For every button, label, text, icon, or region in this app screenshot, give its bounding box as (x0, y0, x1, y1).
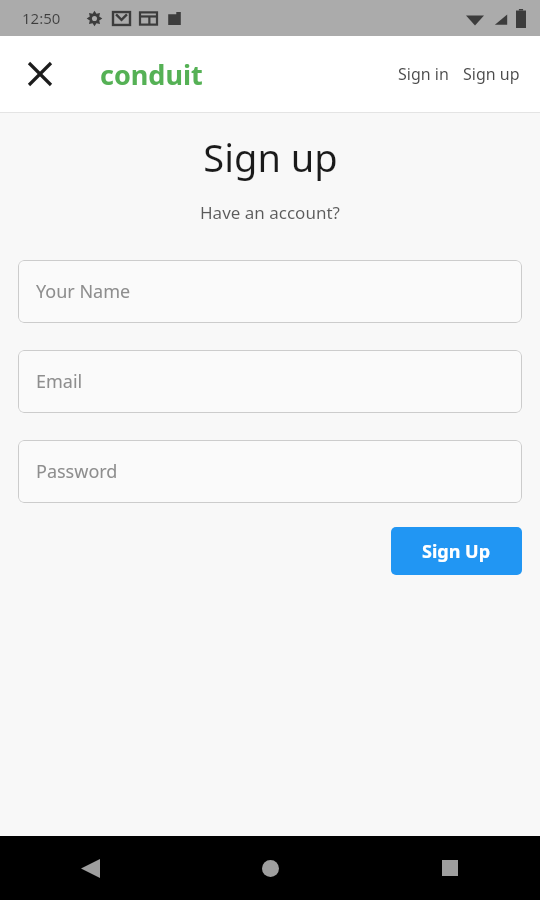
button[interactable]: Close (18, 52, 62, 96)
button[interactable]: Sign Up (391, 527, 522, 575)
button[interactable]: Back (0, 836, 180, 900)
button[interactable]: Email (18, 350, 522, 413)
staticText: Sign Up (422, 539, 491, 564)
staticText: Sign up (203, 131, 338, 183)
button[interactable]: Have an account? (196, 197, 344, 228)
staticText: Password (36, 459, 118, 484)
button[interactable]: Sign in (394, 57, 453, 91)
button[interactable]: Your Name (18, 260, 522, 323)
staticText: 12:50 (22, 8, 61, 28)
button[interactable]: Sign up (459, 57, 524, 91)
staticText: Have an account? (200, 201, 340, 224)
staticText: Your Name (36, 279, 131, 304)
staticText: Sign up (463, 63, 520, 85)
staticText: Email (36, 369, 83, 394)
staticText: Sign in (398, 63, 449, 85)
button[interactable]: Password (18, 440, 522, 503)
button[interactable]: conduit (100, 56, 203, 93)
button[interactable]: Home (180, 836, 360, 900)
button[interactable]: Recents (360, 836, 540, 900)
